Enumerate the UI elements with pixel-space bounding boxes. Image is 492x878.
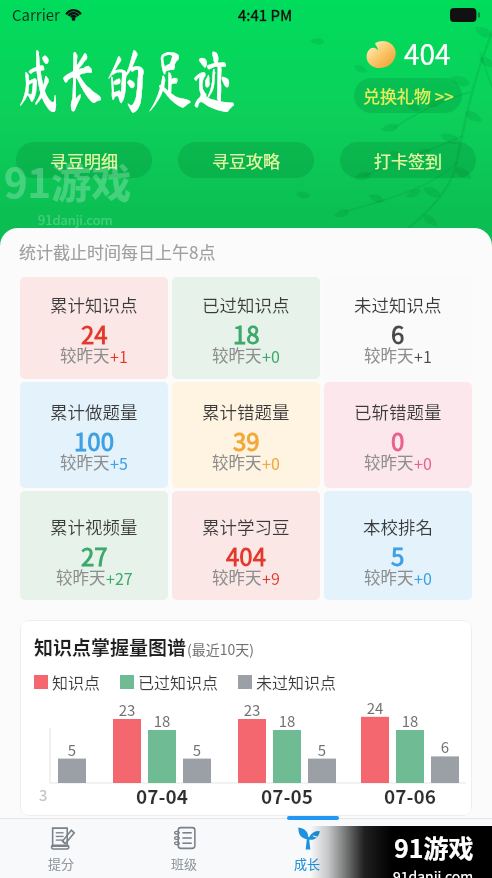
- staticText: 18: [397, 710, 423, 732]
- staticText: +0: [262, 451, 280, 474]
- staticText: 07-04: [132, 782, 192, 810]
- staticText: 91游戏: [394, 829, 474, 865]
- staticText: 18: [149, 710, 175, 732]
- staticText: 成长的足迹: [16, 45, 236, 114]
- staticText: +0: [414, 451, 432, 474]
- staticText: 3: [39, 784, 48, 806]
- staticText: (最近10天): [187, 639, 255, 659]
- staticText: 5: [59, 739, 85, 761]
- staticText: 累计学习豆: [202, 514, 290, 539]
- button[interactable]: 累计错题量: [172, 382, 320, 488]
- staticText: 班级: [171, 854, 198, 873]
- staticText: 较昨天: [212, 450, 262, 474]
- staticText: 较昨天: [56, 565, 106, 589]
- button[interactable]: 班级: [123, 819, 246, 878]
- staticText: 较昨天: [364, 565, 414, 589]
- button[interactable]: 累计做题量: [20, 382, 168, 488]
- button[interactable]: 兑换礼物 >>: [354, 78, 462, 113]
- staticText: 4:41 PM: [238, 4, 293, 26]
- button[interactable]: 寻豆攻略: [178, 142, 314, 178]
- staticText: 未过知识点: [256, 670, 337, 693]
- staticText: 91danji.com: [393, 866, 474, 878]
- button[interactable]: 打卡签到: [340, 142, 476, 178]
- staticText: 累计视频量: [50, 514, 138, 539]
- staticText: 18: [274, 710, 300, 732]
- staticText: 07-05: [257, 782, 317, 810]
- staticText: 兑换礼物 >>: [363, 83, 454, 108]
- staticText: 我的: [417, 854, 444, 873]
- staticText: +0: [262, 344, 280, 367]
- staticText: 5: [184, 739, 210, 761]
- staticText: 未过知识点: [354, 292, 442, 317]
- staticText: 5: [309, 739, 335, 761]
- staticText: 6: [391, 316, 405, 351]
- staticText: 91danji.com: [38, 210, 113, 229]
- staticText: 91游戏: [4, 152, 132, 210]
- staticText: 07-06: [380, 782, 440, 810]
- button[interactable]: 寻豆明细: [16, 142, 152, 178]
- staticText: 23: [239, 699, 265, 721]
- staticText: +1: [110, 344, 128, 367]
- staticText: 统计截止时间每日上午8点: [19, 239, 216, 264]
- staticText: 较昨天: [364, 343, 414, 367]
- staticText: 6: [432, 736, 458, 758]
- staticText: 24: [81, 316, 108, 351]
- staticText: 404: [404, 33, 451, 74]
- staticText: 23: [114, 699, 140, 721]
- staticText: 0: [391, 423, 405, 458]
- staticText: 已过知识点: [202, 292, 290, 317]
- staticText: 24: [362, 697, 388, 719]
- staticText: 打卡签到: [374, 148, 442, 173]
- staticText: 提分: [48, 854, 75, 873]
- staticText: 知识点掌握量图谱: [34, 633, 187, 661]
- staticText: 较昨天: [212, 343, 262, 367]
- staticText: Carrier: [12, 4, 60, 26]
- staticText: 已斩错题量: [354, 399, 442, 424]
- button[interactable]: 累计视频量: [20, 491, 168, 600]
- staticText: 累计做题量: [50, 399, 138, 424]
- staticText: 成长: [294, 854, 321, 873]
- button[interactable]: 累计知识点: [20, 277, 168, 379]
- staticText: 累计错题量: [202, 399, 290, 424]
- staticText: 39: [233, 423, 260, 458]
- staticText: 知识点: [52, 670, 101, 693]
- staticText: 累计知识点: [50, 292, 138, 317]
- staticText: +5: [110, 451, 128, 474]
- staticText: 寻豆明细: [50, 148, 118, 173]
- staticText: 404: [226, 538, 266, 573]
- staticText: 5: [391, 538, 405, 573]
- staticText: 18: [233, 316, 260, 351]
- staticText: 本校排名: [363, 514, 433, 539]
- staticText: +27: [106, 566, 133, 589]
- staticText: +1: [414, 344, 432, 367]
- staticText: 寻豆攻略: [212, 148, 280, 173]
- button[interactable]: 已斩错题量: [324, 382, 472, 488]
- button[interactable]: 提分: [0, 819, 123, 878]
- button[interactable]: 本校排名: [324, 491, 472, 600]
- button[interactable]: 成长: [246, 819, 369, 878]
- button[interactable]: 累计学习豆: [172, 491, 320, 600]
- staticText: 较昨天: [364, 450, 414, 474]
- staticText: 较昨天: [60, 450, 110, 474]
- staticText: 已过知识点: [138, 670, 219, 693]
- button[interactable]: 我的: [369, 819, 492, 878]
- staticText: +9: [262, 566, 280, 589]
- button[interactable]: 未过知识点: [324, 277, 472, 379]
- staticText: 较昨天: [60, 343, 110, 367]
- staticText: 100: [74, 423, 114, 458]
- button[interactable]: 已过知识点: [172, 277, 320, 379]
- staticText: +0: [414, 566, 432, 589]
- staticText: 27: [81, 538, 108, 573]
- staticText: 较昨天: [212, 565, 262, 589]
